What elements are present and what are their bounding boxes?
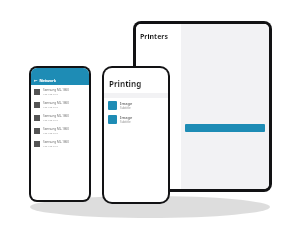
- staticText: Samsung ML-1860: [43, 88, 70, 92]
- staticText: 192.168.0.10: [43, 131, 58, 134]
- staticText: Subtitle: [120, 120, 131, 124]
- staticText: Printers: [140, 32, 168, 42]
- staticText: 192.168.0.10: [43, 105, 58, 108]
- staticText: Samsung ML-1860: [43, 140, 70, 144]
- staticText: 192.168.0.10: [43, 118, 58, 121]
- staticText: Image: [120, 101, 133, 106]
- staticText: Samsung ML-1860: [43, 127, 70, 131]
- staticText: Image: [120, 115, 133, 120]
- staticText: Samsung ML-1860: [43, 114, 70, 118]
- staticText: Printing: [109, 78, 142, 89]
- staticText: 192.168.0.10: [43, 92, 58, 95]
- staticText: 192.168.0.10: [43, 144, 58, 147]
- staticText: Subtitle: [120, 106, 131, 110]
- staticText: Samsung ML-1860: [43, 101, 70, 105]
- staticText: ← Network: [34, 78, 56, 83]
